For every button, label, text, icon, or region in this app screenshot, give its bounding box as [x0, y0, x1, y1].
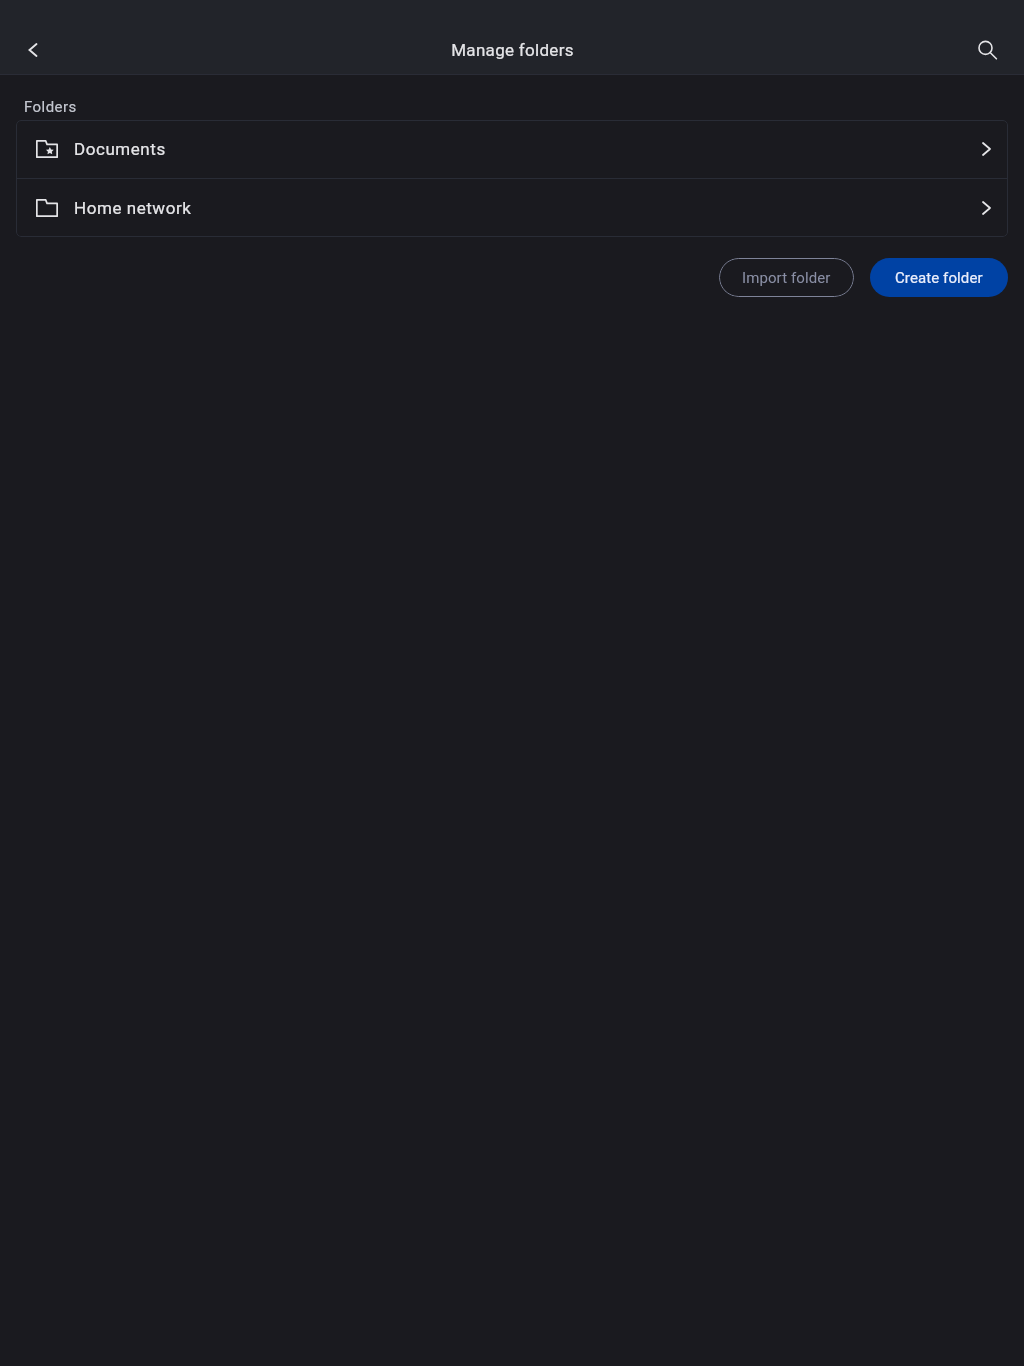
staticText: Import folder: [742, 269, 831, 287]
staticText: Home network: [74, 198, 192, 218]
staticText: Documents: [74, 139, 166, 159]
button[interactable]: Search: [964, 26, 1012, 74]
button[interactable]: Documents: [16, 120, 1008, 178]
button[interactable]: Home network: [16, 179, 1008, 237]
staticText: Manage folders: [451, 40, 574, 60]
staticText: Folders: [24, 98, 77, 116]
staticText: Create folder: [895, 269, 983, 287]
button[interactable]: Back: [9, 26, 57, 74]
button[interactable]: Import folder: [719, 258, 854, 297]
button[interactable]: Create folder: [870, 258, 1008, 297]
